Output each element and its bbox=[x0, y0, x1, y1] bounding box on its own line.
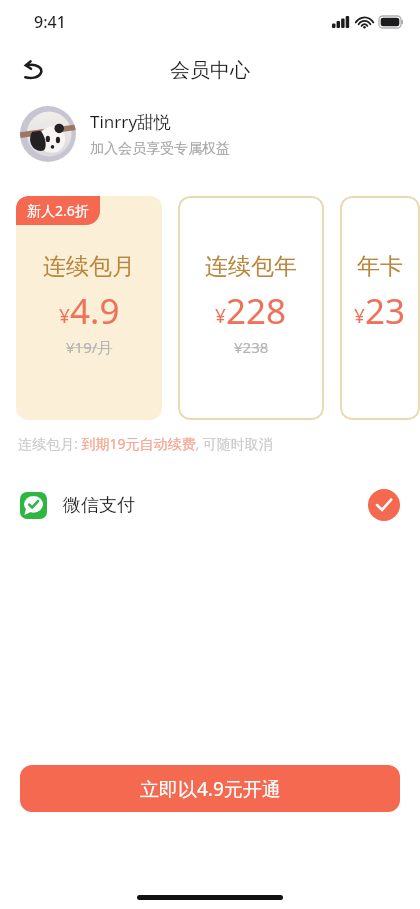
staticText: 23 bbox=[365, 287, 406, 335]
staticText: 连续包年 bbox=[205, 252, 297, 281]
staticText: 4.9 bbox=[70, 287, 120, 335]
button[interactable]: Tinrry甜悦 bbox=[0, 96, 420, 166]
staticText: Tinrry甜悦 bbox=[90, 110, 172, 133]
staticText: 微信支付 bbox=[63, 494, 135, 517]
other: Selected bbox=[368, 489, 400, 521]
staticText: 连续包月 bbox=[43, 252, 135, 281]
button[interactable]: 连续包月 bbox=[16, 196, 162, 420]
staticText: 立即以4.9元开通 bbox=[140, 776, 281, 802]
staticText: ¥238 bbox=[234, 337, 269, 357]
staticText: ¥ bbox=[354, 303, 365, 329]
staticText: 会员中心 bbox=[170, 58, 250, 83]
button[interactable]: 立即以4.9元开通 bbox=[20, 765, 400, 812]
staticText: 连续包月: 到期19元自动续费, 可随时取消 bbox=[18, 434, 273, 453]
staticText: 加入会员享受专属权益 bbox=[90, 140, 230, 158]
staticText: ¥ bbox=[59, 303, 70, 329]
button[interactable]: 年卡 bbox=[340, 196, 420, 420]
button[interactable]: Back bbox=[10, 48, 54, 92]
staticText: 228 bbox=[226, 287, 287, 335]
staticText: 9:41 bbox=[34, 11, 66, 33]
staticText: ¥19/月 bbox=[66, 337, 113, 357]
staticText: 新人2.6折 bbox=[27, 201, 89, 220]
button[interactable]: 微信支付 bbox=[0, 483, 420, 527]
staticText: ¥ bbox=[215, 303, 226, 329]
staticText: 年卡 bbox=[357, 252, 403, 281]
button[interactable]: 连续包年 bbox=[178, 196, 324, 420]
